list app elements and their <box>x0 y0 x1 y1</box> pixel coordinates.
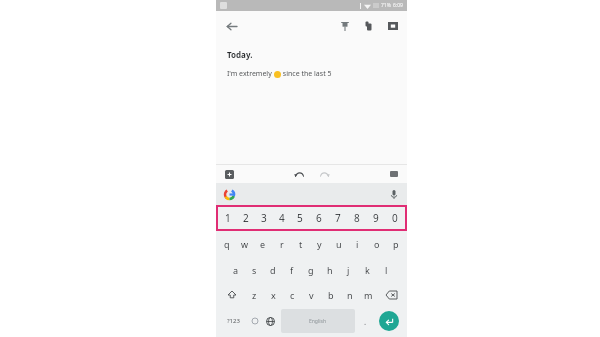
button[interactable]: Change language <box>262 309 279 333</box>
button[interactable]: Pin <box>334 15 356 37</box>
button[interactable]: 2 <box>237 205 255 231</box>
staticText: Today. <box>227 49 253 60</box>
button[interactable]: Redo <box>317 166 333 182</box>
staticText: b <box>328 289 334 301</box>
button[interactable]: q <box>218 231 236 257</box>
staticText: x <box>271 289 276 301</box>
staticText: e <box>260 238 266 250</box>
button[interactable]: p <box>386 231 405 257</box>
button[interactable]: d <box>263 257 282 282</box>
button[interactable]: ?123 <box>219 309 247 333</box>
button[interactable]: j <box>339 257 358 282</box>
button[interactable]: 3 <box>255 205 273 231</box>
button[interactable]: n <box>340 282 359 307</box>
button[interactable]: 8 <box>347 205 366 231</box>
staticText: 6:09 <box>393 2 403 9</box>
staticText: u <box>336 238 342 250</box>
staticText: r <box>280 238 284 250</box>
button[interactable]: Back <box>220 15 242 37</box>
button[interactable]: b <box>321 282 340 307</box>
staticText: d <box>270 264 276 276</box>
button[interactable]: Shift <box>219 282 245 307</box>
button[interactable]: o <box>367 231 386 257</box>
button[interactable]: u <box>329 231 348 257</box>
button[interactable]: 9 <box>366 205 385 231</box>
button[interactable]: More options <box>386 166 402 182</box>
staticText: s <box>252 264 257 276</box>
button[interactable]: 5 <box>291 205 309 231</box>
staticText: 3 <box>261 211 267 225</box>
staticText: y <box>317 238 322 250</box>
staticText: 8 <box>354 211 360 225</box>
staticText: q <box>224 238 230 250</box>
button[interactable]: Backspace <box>378 282 404 307</box>
staticText: a <box>233 264 239 276</box>
staticText: v <box>309 289 314 301</box>
staticText: I'm extremely <box>227 69 274 79</box>
staticText: 4 <box>279 211 285 225</box>
staticText: l <box>385 264 388 276</box>
button[interactable]: m <box>359 282 378 307</box>
button[interactable]: 0 <box>385 205 404 231</box>
staticText: . <box>364 316 367 327</box>
staticText: 9 <box>373 211 379 225</box>
staticText: j <box>347 264 350 276</box>
staticText: p <box>393 238 399 250</box>
button[interactable]: a <box>227 257 245 282</box>
staticText: 6 <box>316 211 322 225</box>
button[interactable]: r <box>272 231 291 257</box>
staticText: m <box>364 289 373 301</box>
button[interactable]: . <box>357 309 374 333</box>
button[interactable]: English <box>281 309 355 333</box>
button[interactable]: 6 <box>309 205 328 231</box>
button[interactable]: h <box>320 257 339 282</box>
staticText: 71% <box>381 2 391 9</box>
staticText: 1 <box>225 211 231 225</box>
button[interactable]: f <box>282 257 301 282</box>
button[interactable]: Undo <box>291 166 307 182</box>
button[interactable]: c <box>283 282 302 307</box>
staticText: o <box>374 238 380 250</box>
staticText: English <box>309 318 327 325</box>
staticText: n <box>347 289 353 301</box>
button[interactable]: Reminder <box>358 15 380 37</box>
button[interactable]: i <box>348 231 367 257</box>
button[interactable]: g <box>301 257 320 282</box>
button[interactable]: t <box>291 231 310 257</box>
staticText: 0 <box>392 211 398 225</box>
button[interactable]: Emoji <box>247 309 262 333</box>
button[interactable]: Add <box>221 166 237 182</box>
staticText: i <box>356 238 359 250</box>
button[interactable]: v <box>302 282 321 307</box>
button[interactable]: e <box>254 231 272 257</box>
staticText: z <box>252 289 257 301</box>
button[interactable]: 1 <box>219 205 237 231</box>
button[interactable]: Google search <box>221 186 237 202</box>
staticText: w <box>241 238 249 250</box>
button[interactable]: 4 <box>273 205 291 231</box>
button[interactable]: w <box>236 231 254 257</box>
button[interactable]: l <box>377 257 396 282</box>
button[interactable]: x <box>264 282 283 307</box>
staticText: 2 <box>243 211 249 225</box>
button[interactable]: s <box>245 257 263 282</box>
staticText: f <box>290 264 294 276</box>
staticText: 7 <box>335 211 341 225</box>
staticText: g <box>308 264 314 276</box>
button[interactable]: Voice input <box>386 186 402 202</box>
staticText: ?123 <box>227 317 240 325</box>
button[interactable]: y <box>310 231 329 257</box>
button[interactable]: Archive <box>382 15 404 37</box>
staticText: c <box>290 289 295 301</box>
button[interactable]: 7 <box>328 205 347 231</box>
staticText: k <box>365 264 370 276</box>
button[interactable]: k <box>358 257 377 282</box>
staticText: since the last 5 <box>281 69 332 79</box>
staticText: t <box>299 238 303 250</box>
button[interactable]: Enter <box>379 311 399 331</box>
staticText: h <box>327 264 333 276</box>
button[interactable]: z <box>245 282 264 307</box>
staticText: 5 <box>297 211 303 225</box>
